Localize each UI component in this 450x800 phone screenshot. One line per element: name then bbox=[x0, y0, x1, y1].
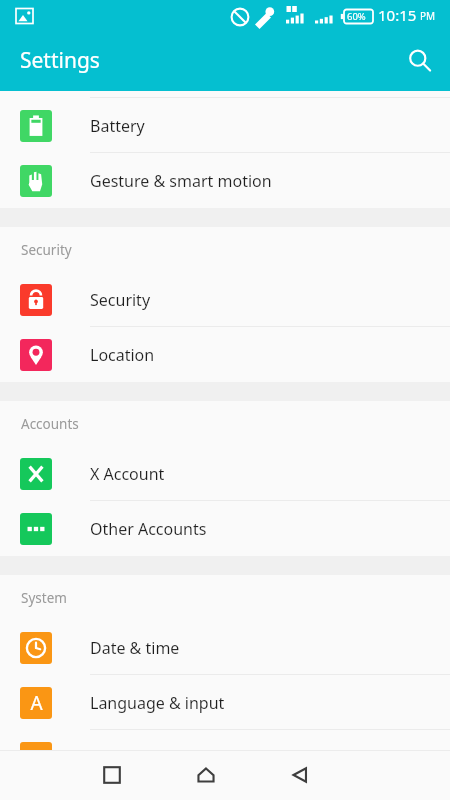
button[interactable] bbox=[0, 730, 450, 785]
button[interactable]: Back bbox=[278, 753, 322, 797]
button[interactable]: Battery bbox=[0, 98, 450, 153]
button[interactable]: A bbox=[0, 675, 450, 730]
staticText: Other Accounts bbox=[90, 518, 207, 540]
button[interactable]: Home bbox=[184, 753, 228, 797]
button[interactable]: X Account bbox=[0, 446, 450, 501]
staticText: Date & time bbox=[90, 637, 180, 659]
staticText: Security bbox=[90, 289, 151, 311]
staticText: Settings bbox=[20, 46, 100, 75]
staticText: 60% bbox=[347, 10, 366, 23]
staticText: Security bbox=[21, 241, 72, 259]
button[interactable]: Date & time bbox=[0, 620, 450, 675]
staticText: System bbox=[21, 589, 67, 607]
staticText: Battery bbox=[90, 115, 145, 137]
staticText: PM bbox=[420, 9, 436, 23]
button[interactable]: Other Accounts bbox=[0, 501, 450, 556]
button[interactable]: Gesture & smart motion bbox=[0, 153, 450, 208]
staticText: 10:15 bbox=[378, 5, 417, 25]
button[interactable]: Recent apps bbox=[90, 753, 134, 797]
staticText: X Account bbox=[90, 463, 165, 485]
staticText: Location bbox=[90, 344, 155, 366]
button[interactable]: Location bbox=[0, 327, 450, 382]
staticText: Gesture & smart motion bbox=[90, 170, 272, 192]
staticText: Accounts bbox=[21, 415, 79, 433]
button[interactable]: Search bbox=[396, 37, 444, 85]
staticText: A bbox=[30, 690, 43, 716]
button[interactable]: Security bbox=[0, 272, 450, 327]
staticText: Language & input bbox=[90, 692, 225, 714]
